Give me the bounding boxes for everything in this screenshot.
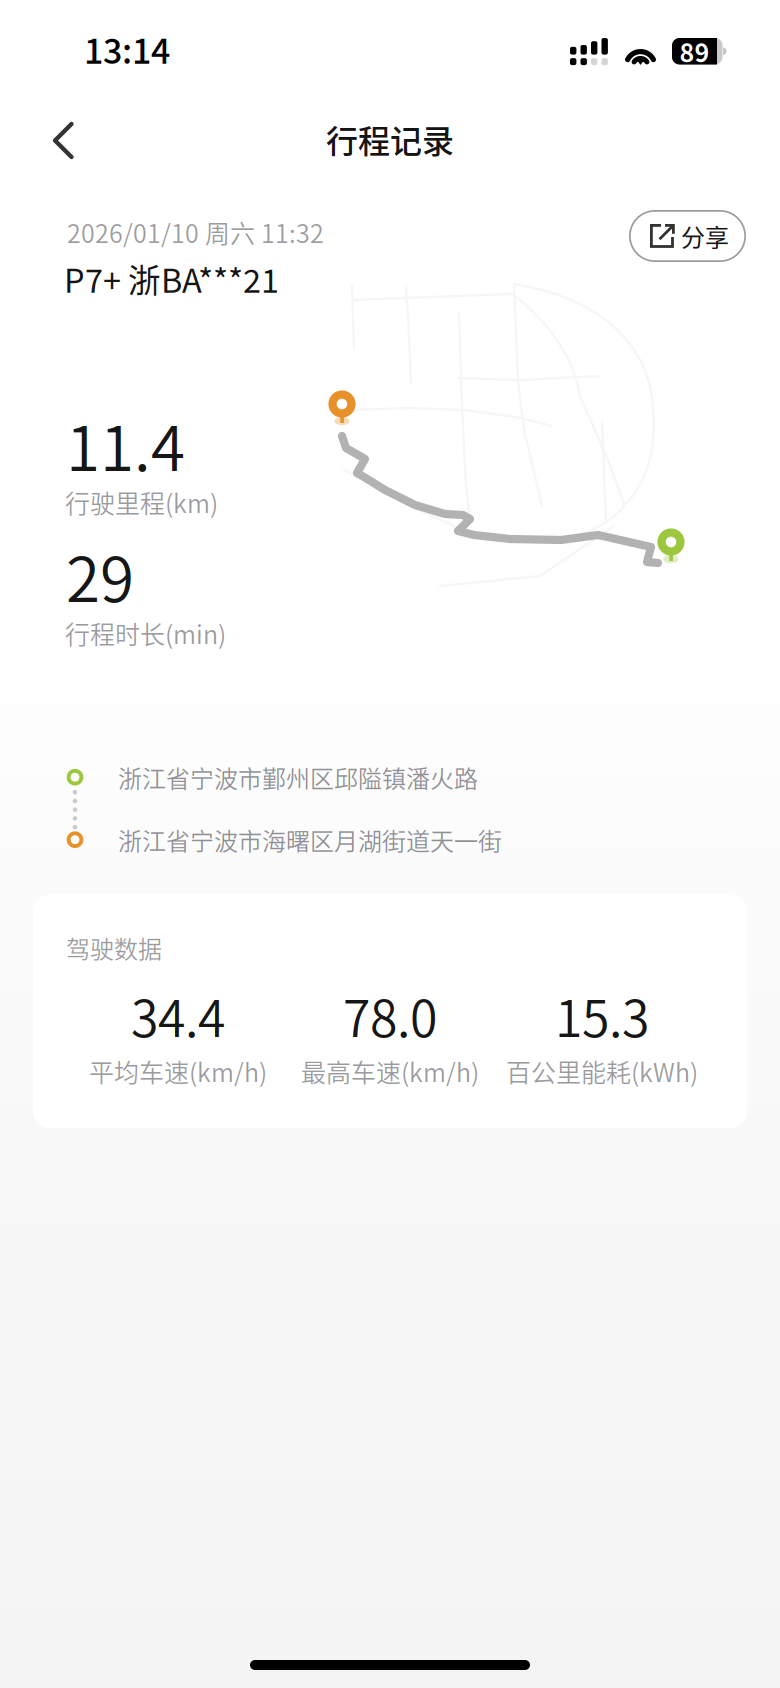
staticText: 百公里能耗(kWh) bbox=[506, 1053, 698, 1089]
staticText: 浙江省宁波市海曙区月湖街道天一街 bbox=[118, 822, 502, 857]
staticText: 89 bbox=[679, 33, 709, 69]
staticText: 浙江省宁波市鄞州区邱隘镇潘火路 bbox=[118, 760, 478, 795]
staticText: P7+ 浙BA***21 bbox=[64, 255, 279, 302]
staticText: 平均车速(km/h) bbox=[89, 1053, 267, 1089]
button[interactable]: Back bbox=[20, 101, 107, 179]
staticText: 11.4 bbox=[66, 399, 185, 489]
staticText: 2026/01/10 周六 11:32 bbox=[67, 214, 324, 250]
staticText: 分享 bbox=[681, 219, 729, 253]
staticText: 15.3 bbox=[555, 979, 649, 1051]
staticText: 行驶里程(km) bbox=[65, 484, 218, 520]
staticText: 驾驶数据 bbox=[66, 930, 162, 965]
staticText: 13:14 bbox=[84, 24, 170, 74]
staticText: 29 bbox=[66, 530, 134, 620]
staticText: 最高车速(km/h) bbox=[301, 1053, 479, 1089]
staticText: 行程记录 bbox=[326, 116, 454, 162]
staticText: 行程时长(min) bbox=[65, 615, 226, 651]
button[interactable]: 分享 bbox=[629, 210, 746, 262]
staticText: 78.0 bbox=[343, 979, 437, 1051]
staticText: 34.4 bbox=[131, 979, 225, 1051]
